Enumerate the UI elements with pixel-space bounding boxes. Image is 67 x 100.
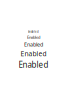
staticText: Enabled — [24, 41, 43, 48]
staticText: Enabled — [28, 30, 39, 33]
staticText: Enabled — [18, 59, 48, 70]
staticText: Enabled — [27, 34, 40, 40]
staticText: Enabled — [20, 49, 46, 58]
